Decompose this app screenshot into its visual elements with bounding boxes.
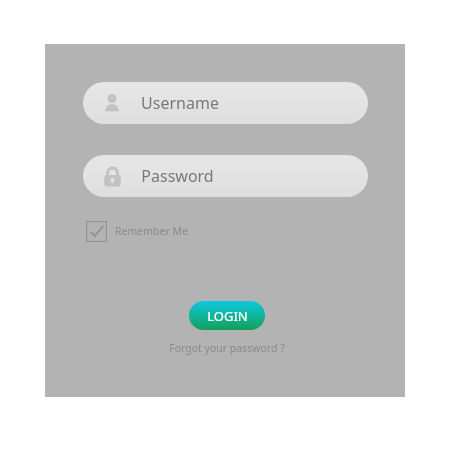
staticText: Username xyxy=(141,92,219,114)
staticText: LOGIN xyxy=(207,307,248,325)
staticText: Remember Me xyxy=(115,224,188,238)
staticText: Password xyxy=(141,165,214,187)
staticText: Forgot your password ? xyxy=(169,341,285,355)
button[interactable]: Forgot your password ? xyxy=(143,339,311,357)
button[interactable]: LOGIN xyxy=(189,301,265,330)
button[interactable]: Password xyxy=(83,155,368,197)
button[interactable]: Remember Me xyxy=(86,219,192,243)
button[interactable]: Username xyxy=(83,82,368,124)
